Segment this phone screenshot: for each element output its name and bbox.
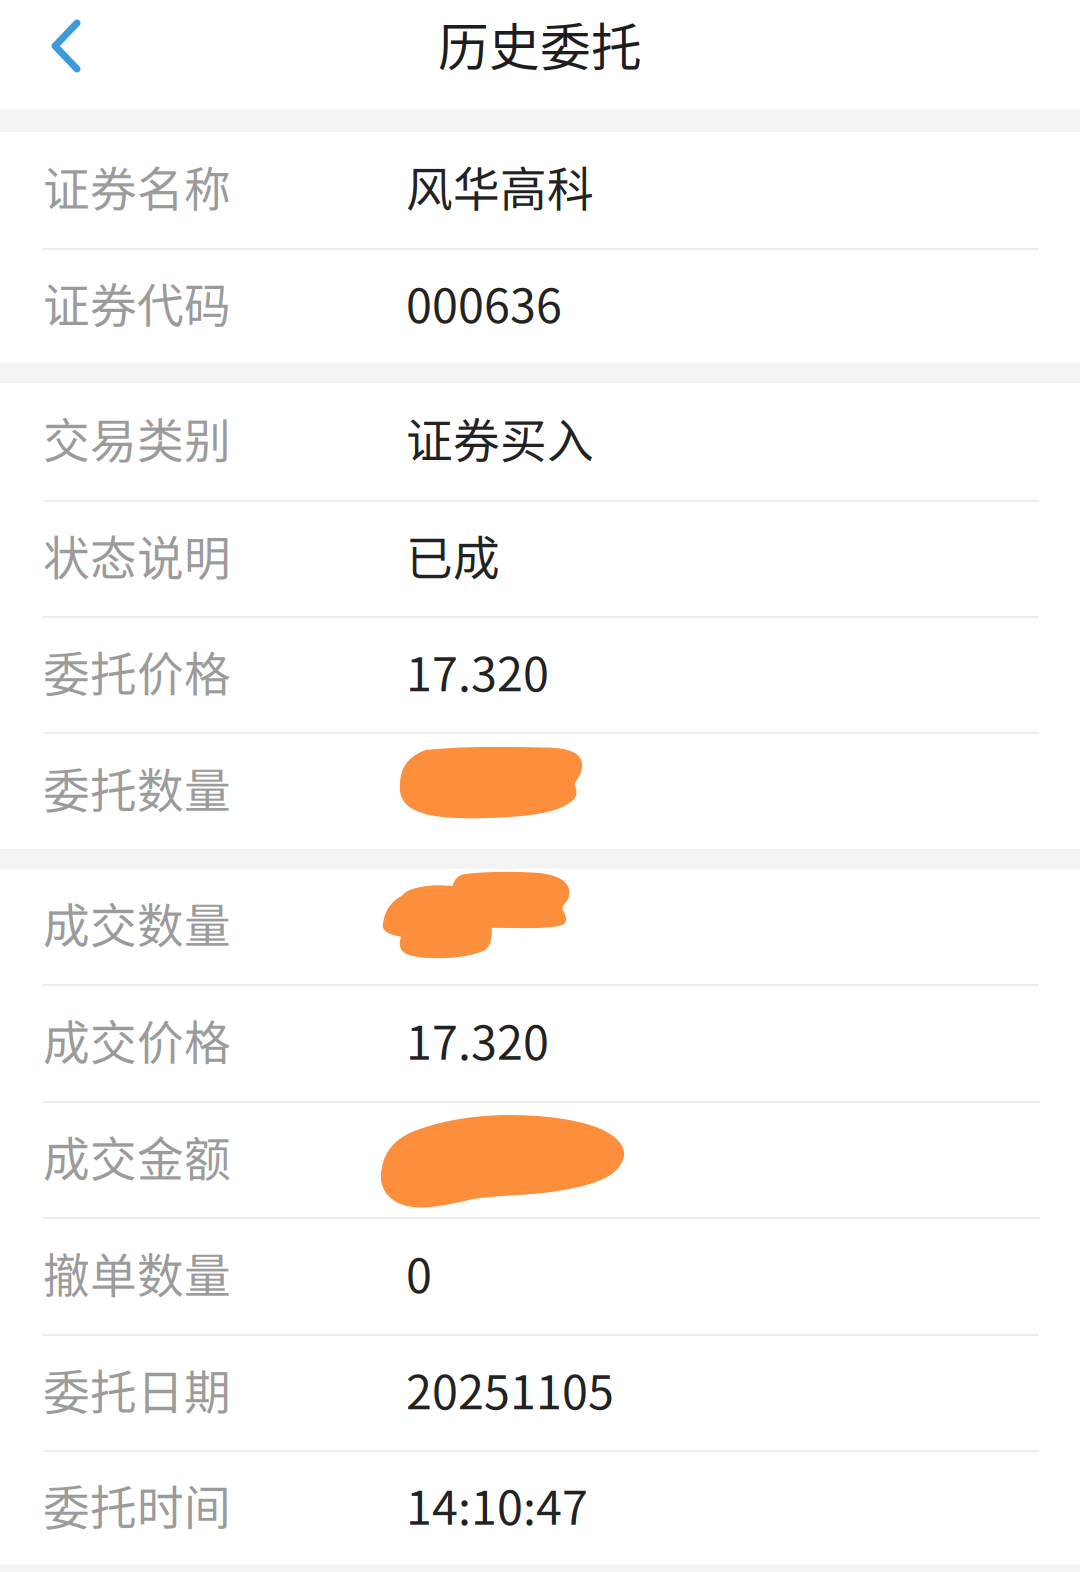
staticText: 委托价格 <box>43 637 231 705</box>
staticText: 撤单数量 <box>43 1239 231 1306</box>
staticText: 证券买入 <box>406 404 594 471</box>
staticText: 000636 <box>406 269 562 336</box>
staticText: 委托时间 <box>43 1471 231 1538</box>
staticText: 委托数量 <box>43 754 231 821</box>
staticText: 证券代码 <box>43 269 231 336</box>
staticText: 成交金额 <box>43 1122 231 1190</box>
staticText: 状态说明 <box>43 521 231 589</box>
staticText: 17.320 <box>406 1006 549 1073</box>
staticText: 14:10:47 <box>406 1471 588 1538</box>
staticText: 历史委托 <box>438 7 642 81</box>
staticText: 证券名称 <box>43 152 231 220</box>
staticText: 20251105 <box>406 1355 614 1423</box>
staticText: 风华高科 <box>406 152 594 220</box>
staticText: 已成 <box>406 521 500 589</box>
staticText: 0 <box>406 1239 432 1306</box>
staticText: 17.320 <box>406 637 549 705</box>
staticText: 委托日期 <box>43 1355 231 1423</box>
button[interactable]: Back <box>0 0 112 88</box>
staticText: 成交价格 <box>43 1006 231 1073</box>
staticText: 成交数量 <box>43 889 231 956</box>
staticText: 交易类别 <box>43 404 231 471</box>
